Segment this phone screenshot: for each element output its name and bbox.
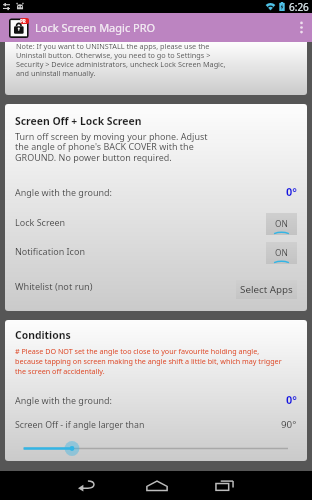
staticText: 0° [286, 184, 297, 199]
button[interactable]: ON [266, 242, 297, 264]
staticText: Screen Off - if angle larger than [15, 419, 145, 431]
staticText: 0° [286, 392, 297, 407]
staticText: 6:26 [289, 0, 309, 13]
staticText: Notification Icon [15, 245, 85, 257]
staticText: Whitelist (not run) [15, 280, 93, 293]
button[interactable]: Recent apps [207, 471, 241, 500]
button[interactable]: More options [290, 13, 312, 42]
staticText: Note: If you want to UNINSTALL the apps,… [16, 42, 226, 78]
staticText: Lock Screen Magic PRO [35, 20, 156, 35]
staticText: ON [275, 247, 288, 258]
staticText: Lock Screen [15, 216, 66, 228]
staticText: Screen Off + Lock Screen [15, 114, 142, 128]
button[interactable] [15, 441, 297, 456]
staticText: 90° [281, 418, 297, 431]
staticText: # Please DO NOT set the angle too close … [15, 346, 282, 376]
button[interactable]: Select Apps [236, 280, 297, 299]
staticText: Select Apps [240, 283, 293, 296]
staticText: Angle with the ground: [15, 186, 112, 198]
button[interactable]: Back [70, 471, 104, 500]
staticText: ON [275, 218, 288, 229]
staticText: Conditions [15, 328, 71, 342]
button[interactable]: Home [140, 471, 174, 500]
button[interactable]: ON [266, 213, 297, 235]
staticText: PRO [20, 18, 29, 24]
staticText: Angle with the ground: [15, 394, 112, 406]
staticText: Turn off screen by moving your phone. Ad… [15, 130, 208, 164]
